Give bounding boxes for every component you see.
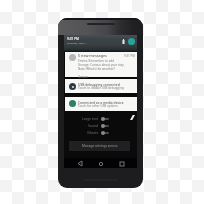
- button[interactable]: Connected as a media device: [65, 97, 137, 111]
- staticText: 9:31 PM: [67, 37, 80, 41]
- button[interactable]: Large text: [78, 115, 109, 122]
- button[interactable]: Sound: [78, 122, 109, 129]
- button[interactable]: Home: [96, 159, 105, 168]
- staticText: 5 new messages: [78, 53, 107, 58]
- staticText: Emma: Remember to add: [78, 59, 115, 63]
- staticText: Sound: [88, 123, 99, 128]
- button[interactable]: Back: [75, 159, 84, 168]
- button[interactable]: Vibrate: [78, 129, 109, 136]
- button[interactable]: Manage settings access: [69, 141, 130, 151]
- staticText: Large text: [82, 116, 99, 121]
- button[interactable]: User profile: [128, 38, 135, 45]
- staticText: George: Curious about your stay: [78, 63, 124, 67]
- staticText: Nate: What's the weather?: [78, 67, 115, 71]
- staticText: Vibrate: [87, 130, 99, 135]
- button[interactable]: 5 new messages: [65, 52, 137, 77]
- staticText: 9:31 PM: [124, 54, 135, 58]
- staticText: 3 more: [78, 75, 88, 78]
- button[interactable]: USB debugging connected: [65, 79, 137, 93]
- button[interactable]: Signal strength: [130, 115, 135, 120]
- staticText: Saturday, May 7: [67, 41, 86, 44]
- staticText: USB debugging connected: [78, 82, 120, 86]
- staticText: Manage settings access: [82, 144, 118, 148]
- staticText: Touch to disable USB debugging: [78, 86, 124, 90]
- staticText: Touch for other USB options: [78, 104, 118, 108]
- button[interactable]: Recent apps: [117, 159, 126, 168]
- staticText: Connected as a media device: [78, 100, 124, 104]
